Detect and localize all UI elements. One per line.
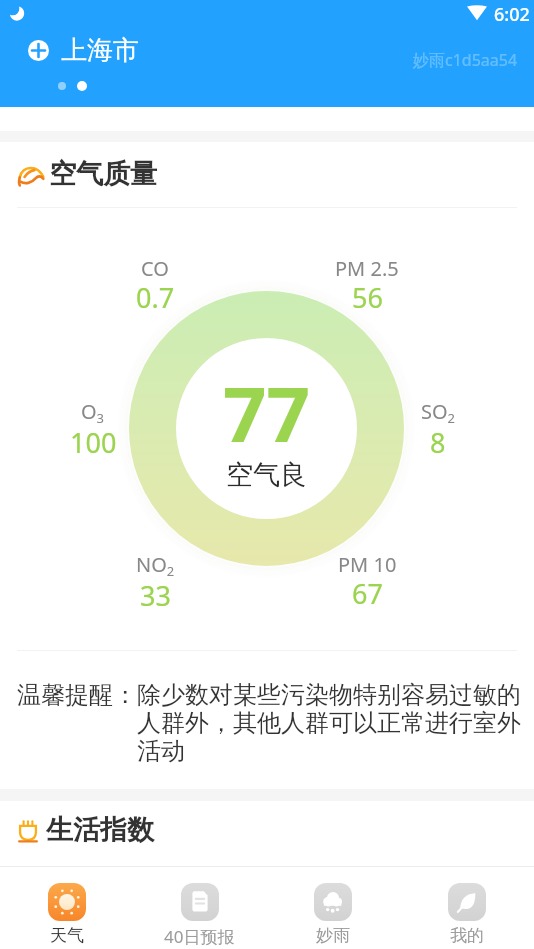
button[interactable]: 天气 bbox=[0, 867, 133, 949]
button[interactable]: 妙雨 bbox=[266, 867, 400, 949]
button[interactable]: Add city bbox=[28, 40, 49, 61]
staticText: 空气质量 bbox=[49, 157, 157, 191]
staticText: 67 bbox=[352, 575, 383, 612]
staticText: 空气良 bbox=[226, 458, 307, 492]
staticText: 77 bbox=[223, 361, 310, 465]
staticText: 8 bbox=[430, 424, 446, 461]
staticText: O3 bbox=[81, 398, 105, 427]
staticText: 生活指数 bbox=[46, 813, 154, 847]
staticText: 0.7 bbox=[136, 279, 175, 316]
staticText: 除少数对某些污染物特别容易过敏的人群外，其他人群可以正常进行室外活动 bbox=[137, 680, 529, 766]
staticText: 56 bbox=[352, 279, 383, 316]
staticText: 妙雨 bbox=[316, 925, 350, 946]
staticText: 上海市 bbox=[61, 34, 139, 67]
staticText: 100 bbox=[70, 424, 117, 461]
button[interactable]: 40日预报 bbox=[133, 867, 266, 949]
staticText: CO bbox=[141, 255, 169, 282]
staticText: PM 2.5 bbox=[335, 255, 399, 282]
staticText: 6:02 bbox=[494, 2, 530, 27]
staticText: 33 bbox=[140, 577, 171, 614]
staticText: SO2 bbox=[421, 398, 456, 427]
button[interactable]: 我的 bbox=[400, 867, 534, 949]
staticText: 妙雨c1d5aa54 bbox=[413, 49, 518, 71]
staticText: 我的 bbox=[450, 925, 484, 946]
staticText: PM 10 bbox=[338, 551, 397, 578]
staticText: NO2 bbox=[136, 551, 175, 580]
staticText: 温馨提醒： bbox=[17, 680, 137, 710]
staticText: 天气 bbox=[50, 925, 84, 946]
staticText: 40日预报 bbox=[164, 925, 235, 948]
